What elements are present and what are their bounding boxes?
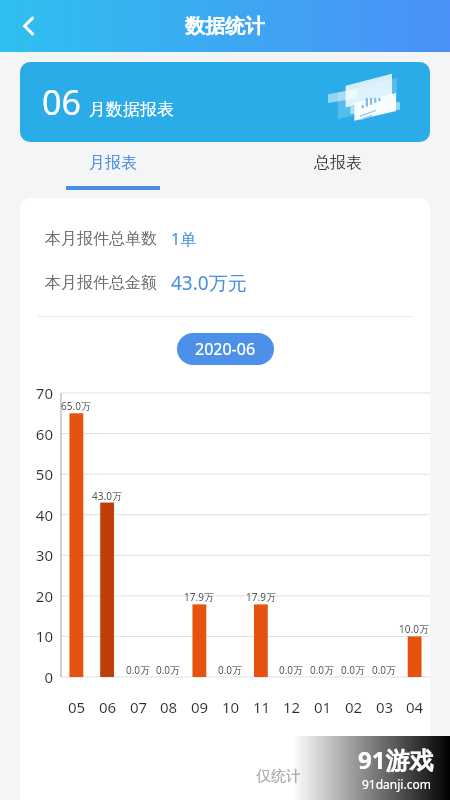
staticText: 10.0万	[385, 622, 430, 636]
staticText: 0.0万	[109, 663, 167, 677]
staticText: 2020-06	[195, 338, 256, 360]
staticText: 07	[123, 697, 154, 717]
staticText: 06	[92, 697, 123, 717]
staticText: 0.0万	[355, 663, 413, 677]
staticText: 1单	[171, 228, 197, 250]
button[interactable]: 2020-06	[177, 333, 274, 365]
staticText: 本月报件总金额	[45, 273, 157, 293]
staticText: 43.0万元	[171, 270, 247, 296]
staticText: 0.0万	[324, 663, 382, 677]
staticText: 月报表	[89, 153, 137, 173]
staticText: 91游戏	[358, 743, 434, 776]
staticText: 01	[307, 697, 338, 717]
staticText: 0.0万	[293, 663, 351, 677]
staticText: 0	[20, 667, 53, 687]
staticText: 91danji.com	[362, 776, 431, 792]
staticText: 20	[20, 586, 53, 606]
staticText: 总报表	[314, 153, 362, 173]
staticText: 05	[61, 697, 92, 717]
staticText: 70	[20, 383, 53, 403]
staticText: 30	[20, 545, 53, 565]
staticText: 12	[276, 697, 307, 717]
staticText: 0.0万	[139, 663, 197, 677]
staticText: 03	[369, 697, 400, 717]
staticText: 09	[184, 697, 215, 717]
staticText: 50	[20, 464, 53, 484]
staticText: 仅统计	[256, 767, 301, 786]
staticText: 17.9万	[170, 590, 228, 604]
button[interactable]: Back	[6, 3, 52, 49]
staticText: 65.0万	[47, 399, 105, 413]
staticText: 60	[20, 424, 53, 444]
staticText: 数据统计	[185, 14, 265, 39]
staticText: 02	[338, 697, 369, 717]
button[interactable]: 总报表	[225, 148, 450, 198]
staticText: 0.0万	[201, 663, 259, 677]
staticText: 04	[399, 697, 430, 717]
staticText: 月数据报表	[89, 99, 174, 120]
staticText: 43.0万	[78, 489, 136, 503]
staticText: 10	[20, 626, 53, 646]
staticText: 40	[20, 505, 53, 525]
staticText: 0.0万	[262, 663, 320, 677]
staticText: 17.9万	[232, 590, 290, 604]
staticText: 08	[153, 697, 184, 717]
staticText: 11	[246, 697, 277, 717]
staticText: 本月报件总单数	[45, 229, 157, 249]
staticText: 10	[215, 697, 246, 717]
button[interactable]: 06	[20, 62, 430, 142]
staticText: 06	[42, 79, 81, 125]
button[interactable]: 月报表	[0, 148, 225, 198]
